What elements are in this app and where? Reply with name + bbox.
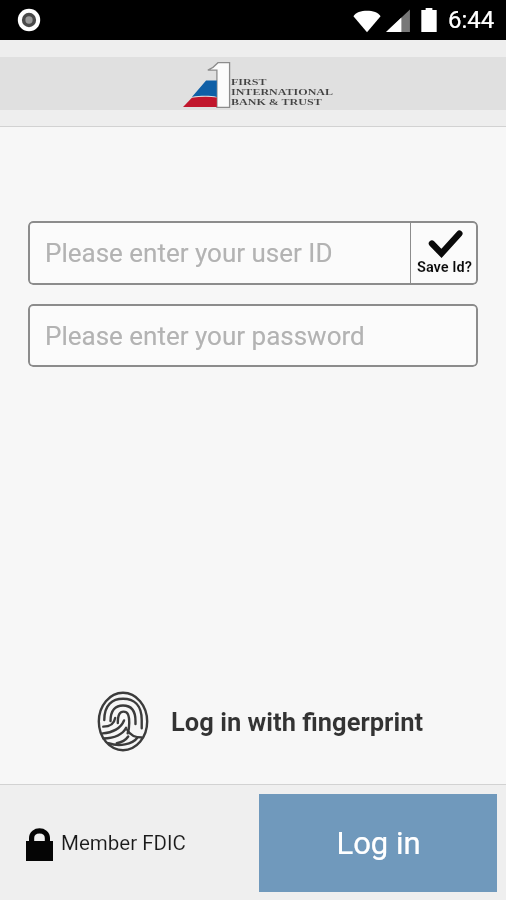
button[interactable]: Log in with fingerprint bbox=[0, 691, 506, 752]
button[interactable]: Member FDIC bbox=[26, 824, 186, 861]
staticText: FIRST bbox=[231, 77, 267, 87]
staticText: Member FDIC bbox=[61, 831, 186, 855]
staticText: Save Id? bbox=[417, 259, 472, 276]
button[interactable]: Save Id bbox=[411, 221, 478, 285]
staticText: 6:44 bbox=[448, 6, 495, 34]
staticText: BANK & TRUST bbox=[231, 97, 322, 107]
staticText: Please enter your password bbox=[45, 321, 365, 351]
staticText: Log in bbox=[336, 825, 421, 861]
staticText: Please enter your user ID bbox=[45, 238, 333, 268]
staticText: Log in with fingerprint bbox=[171, 707, 424, 737]
button[interactable]: Please enter your user ID bbox=[28, 221, 410, 285]
button[interactable]: Please enter your password bbox=[28, 304, 478, 367]
button[interactable]: Log in bbox=[259, 794, 497, 892]
staticText: INTERNATIONAL bbox=[231, 87, 333, 97]
